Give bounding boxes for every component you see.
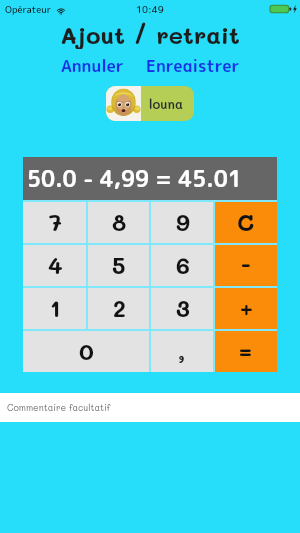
button[interactable]: Annuler [56,52,129,74]
button[interactable]: = [214,329,277,372]
staticText: Enregistrer [146,54,240,72]
staticText: - [241,250,251,280]
button[interactable]: 6 [151,243,215,286]
button[interactable]: 1 [23,286,87,329]
button[interactable]: , [150,329,214,372]
staticText: Opérateur [5,3,52,16]
staticText: 10:49 [136,3,164,16]
staticText: Ajout / retrait [60,19,240,49]
button[interactable]: 2 [87,286,151,329]
button[interactable]: 8 [87,200,151,243]
button[interactable]: 3 [151,286,215,329]
staticText: Annuler [61,54,124,72]
other: louna avatar [106,86,141,121]
staticText: 9 [176,207,190,237]
button[interactable]: + [215,286,277,329]
button[interactable]: louna avatar [106,86,194,121]
staticText: + [240,293,253,323]
staticText: 50.0 - 4,99 = 45.01 [27,163,242,194]
staticText: = [239,336,252,366]
staticText: louna [149,95,183,112]
staticText: 7 [49,207,62,237]
staticText: 5 [112,250,126,280]
button[interactable]: - [215,243,277,286]
button[interactable]: 4 [23,243,87,286]
staticText: 3 [176,293,190,323]
button[interactable]: Enregistrer [141,52,245,74]
button[interactable]: 0 [23,329,150,372]
button[interactable]: 7 [23,200,87,243]
staticText: 2 [113,293,126,323]
button[interactable]: 5 [87,243,151,286]
button[interactable]: 9 [151,200,215,243]
staticText: 8 [112,207,127,237]
staticText: C [237,207,255,237]
staticText: Commentaire facultatif [7,402,111,414]
staticText: 1 [50,293,61,323]
button[interactable]: Commentaire facultatif [0,393,300,422]
staticText: 0 [79,336,94,366]
staticText: 4 [48,250,63,280]
staticText: 6 [176,250,190,280]
button[interactable]: C [215,200,277,243]
staticText: , [178,336,186,366]
